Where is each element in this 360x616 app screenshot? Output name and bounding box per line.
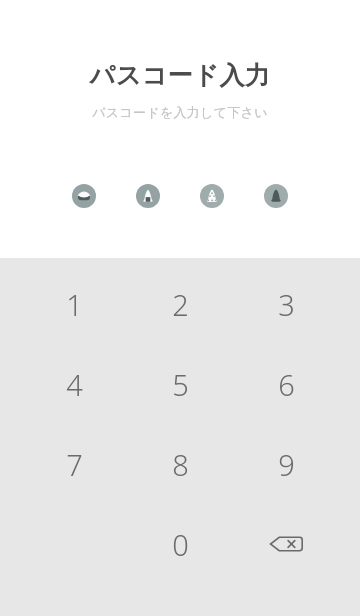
staticText: 0 <box>172 525 189 564</box>
button[interactable]: 2 <box>141 265 219 343</box>
button[interactable]: 3 <box>247 265 325 343</box>
button[interactable]: 5 <box>141 345 219 423</box>
staticText: 5 <box>172 365 189 404</box>
button[interactable]: 4 <box>35 345 113 423</box>
staticText: 9 <box>278 445 295 484</box>
staticText: 8 <box>172 445 189 484</box>
staticText: 1 <box>66 285 83 324</box>
staticText: パスコード入力 <box>0 60 360 91</box>
button[interactable]: 0 <box>141 505 219 583</box>
button[interactable]: 6 <box>247 345 325 423</box>
staticText: 2 <box>172 285 189 324</box>
button[interactable]: 1 <box>35 265 113 343</box>
staticText: パスコードを入力して下さい <box>0 104 360 120</box>
button[interactable]: 8 <box>141 425 219 503</box>
button[interactable]: 7 <box>35 425 113 503</box>
staticText: 4 <box>66 365 83 404</box>
button[interactable]: 9 <box>247 425 325 503</box>
staticText: 6 <box>278 365 295 404</box>
staticText: 3 <box>278 285 295 324</box>
button[interactable]: 削除 <box>247 505 325 583</box>
staticText: 7 <box>66 445 83 484</box>
